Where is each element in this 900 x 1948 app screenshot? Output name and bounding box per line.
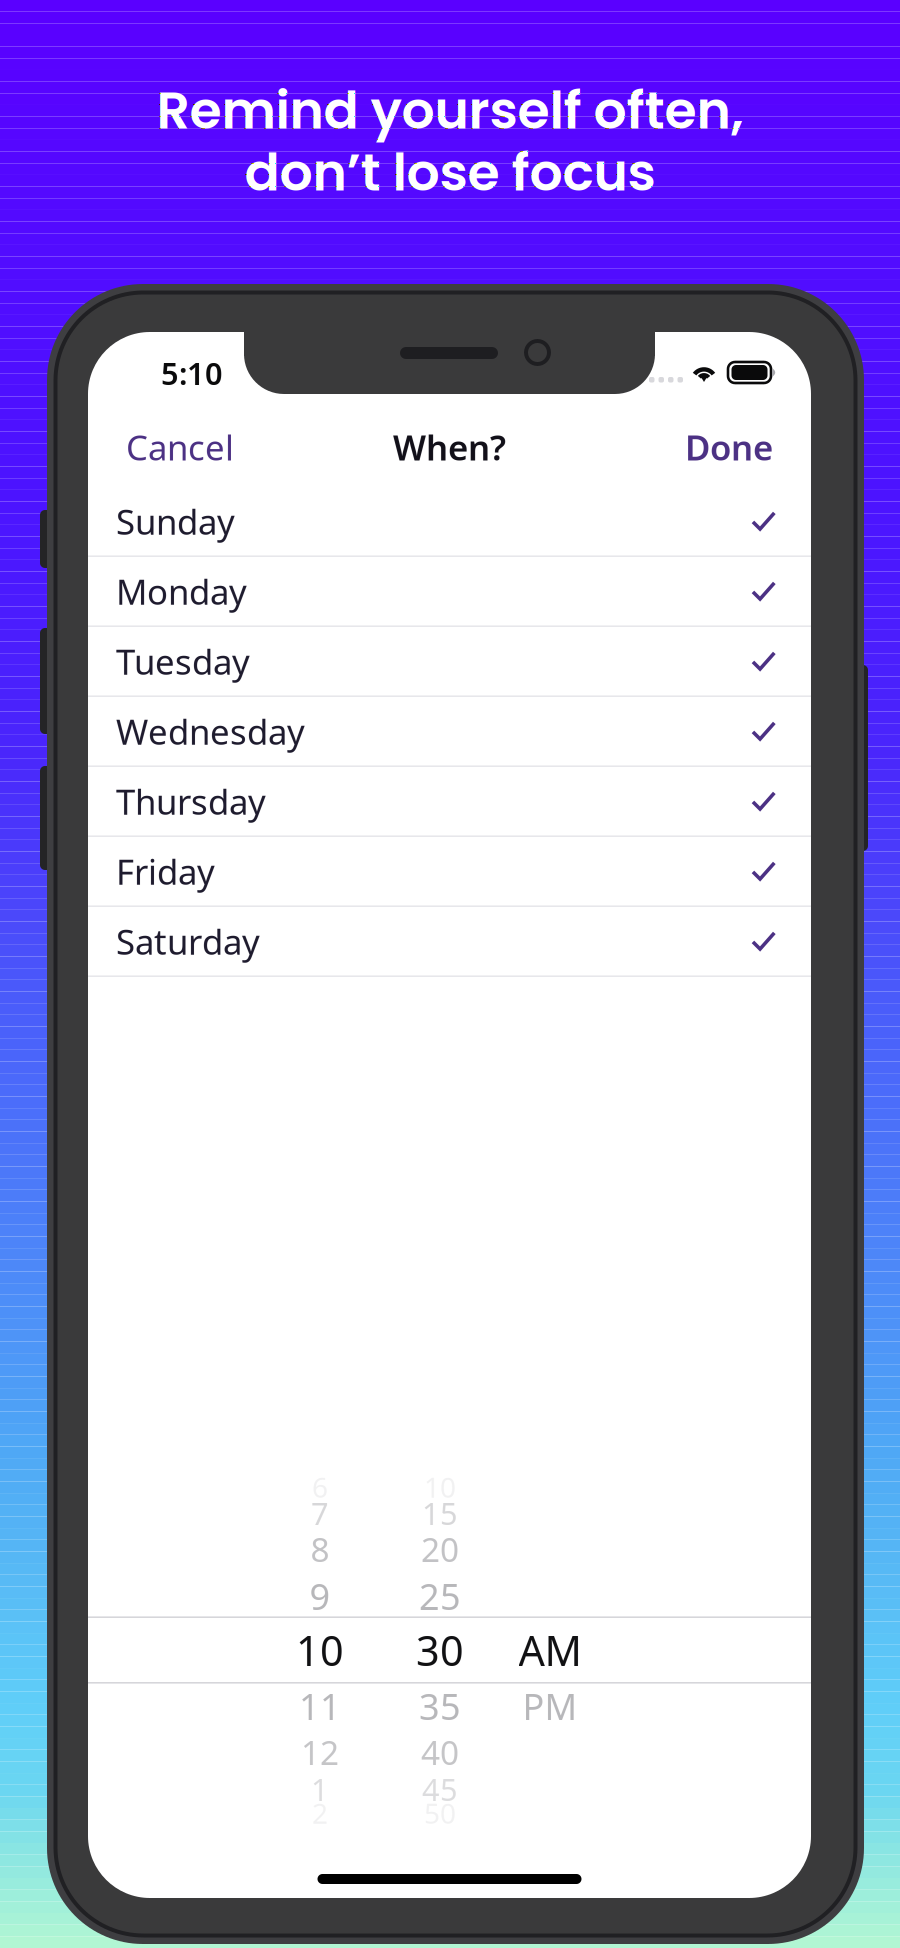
staticText: 1 xyxy=(311,1769,329,1809)
staticText: Done xyxy=(685,424,773,470)
button[interactable]: Wednesday xyxy=(88,697,811,767)
button[interactable]: Done xyxy=(671,408,787,486)
button[interactable]: Tuesday xyxy=(88,627,811,697)
staticText: Wednesday xyxy=(116,708,305,754)
staticText: Tuesday xyxy=(116,638,250,684)
staticText: 45 xyxy=(422,1769,458,1809)
staticText: Saturday xyxy=(116,918,260,964)
button[interactable]: Monday xyxy=(88,557,811,627)
staticText: 15 xyxy=(422,1493,458,1533)
staticText: 11 xyxy=(299,1682,341,1730)
staticText: Thursday xyxy=(116,778,266,824)
button[interactable]: Cancel xyxy=(112,408,248,486)
staticText: Remind yourself often, xyxy=(156,74,743,147)
staticText: Sunday xyxy=(116,498,235,544)
staticText: 10 xyxy=(424,1468,456,1506)
staticText: 2 xyxy=(312,1794,328,1832)
button[interactable]: Saturday xyxy=(88,907,811,977)
button[interactable]: Thursday xyxy=(88,767,811,837)
staticText: 12 xyxy=(301,1730,339,1774)
button[interactable]: Friday xyxy=(88,837,811,907)
staticText: 35 xyxy=(419,1682,461,1730)
button[interactable]: Sunday xyxy=(88,487,811,557)
staticText: 9 xyxy=(309,1572,330,1620)
staticText: 30 xyxy=(416,1623,464,1677)
staticText: 6 xyxy=(312,1468,328,1506)
staticText: PM xyxy=(522,1682,577,1730)
staticText: 25 xyxy=(419,1572,461,1620)
staticText: 8 xyxy=(310,1527,329,1571)
staticText: 50 xyxy=(424,1794,456,1832)
staticText: 7 xyxy=(311,1493,329,1533)
staticText: 20 xyxy=(421,1527,459,1571)
staticText: When? xyxy=(393,424,506,470)
staticText: AM xyxy=(518,1623,581,1677)
staticText: 40 xyxy=(421,1730,459,1774)
staticText: Friday xyxy=(116,848,215,894)
staticText: Monday xyxy=(116,568,247,614)
staticText: 5:10 xyxy=(161,353,223,393)
staticText: Cancel xyxy=(126,424,234,470)
staticText: don’t lose focus xyxy=(244,136,655,209)
staticText: 10 xyxy=(296,1623,344,1677)
